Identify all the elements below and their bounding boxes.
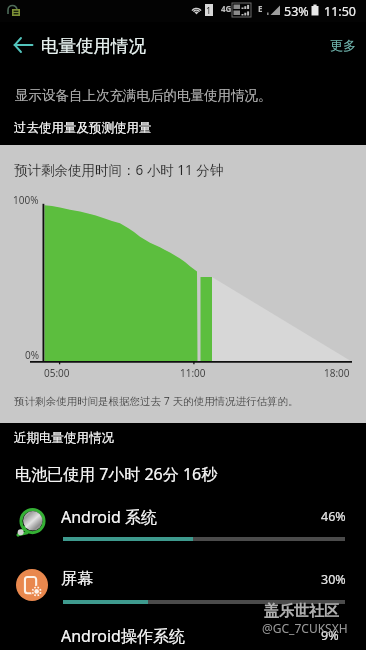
staticText: 100% — [13, 193, 39, 207]
staticText: 电池已使用 7小时 26分 16秒 — [15, 463, 218, 485]
button[interactable]: 屏幕 — [0, 569, 366, 625]
staticText: 11:50 — [324, 3, 356, 20]
button[interactable]: Android 系统 — [0, 506, 366, 562]
staticText: E — [258, 3, 263, 14]
staticText: 显示设备自上次充满电后的电量使用情况。 — [15, 87, 272, 104]
staticText: 屏幕 — [61, 569, 93, 589]
staticText: 预计剩余使用时间：6 小时 11 分钟 — [14, 161, 224, 179]
staticText: 过去使用量及预测使用量 — [14, 120, 152, 136]
staticText: 30% — [321, 571, 346, 588]
button[interactable]: Android操作系统 — [0, 625, 366, 650]
button[interactable]: 更多 — [320, 28, 366, 62]
staticText: 0% — [25, 348, 40, 362]
staticText: 4G — [221, 3, 232, 14]
staticText: 1 — [206, 4, 212, 16]
staticText: 18:00 — [324, 366, 350, 380]
button[interactable]: Back — [6, 28, 40, 62]
staticText: @GC_7CUKSXH — [262, 620, 348, 636]
staticText: 05:00 — [44, 366, 70, 380]
staticText: Android操作系统 — [61, 625, 185, 647]
staticText: Android 系统 — [61, 506, 158, 528]
staticText: 9% — [321, 627, 339, 644]
staticText: 11:00 — [180, 366, 206, 380]
staticText: 盖乐世社区 — [264, 602, 339, 621]
staticText: 46% — [321, 508, 346, 525]
staticText: 预计剩余使用时间是根据您过去 7 天的使用情况进行估算的。 — [14, 394, 299, 408]
staticText: 更多 — [330, 37, 356, 53]
staticText: 53% — [284, 3, 309, 20]
staticText: 电量使用情况 — [41, 35, 146, 57]
staticText: 近期电量使用情况 — [14, 430, 114, 446]
